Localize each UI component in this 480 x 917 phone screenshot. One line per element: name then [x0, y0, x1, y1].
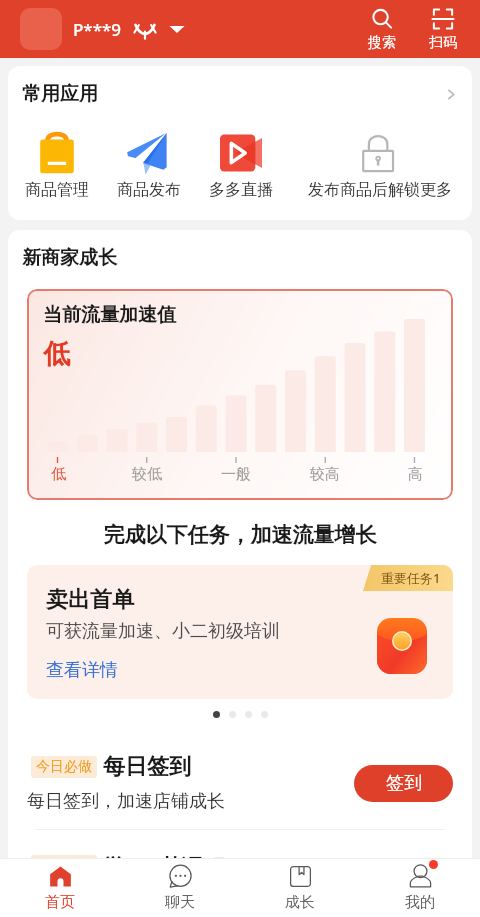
button[interactable]: Switch shop [168, 20, 186, 38]
staticText: 扫码 [429, 34, 457, 52]
button[interactable]: 多多直播 [195, 132, 287, 200]
button[interactable]: Shop avatar [20, 8, 62, 50]
button[interactable]: 今日必做 [27, 753, 453, 813]
staticText: 今日必做 [36, 857, 92, 875]
button[interactable]: 我的 [360, 859, 480, 917]
staticText: 高 [408, 465, 423, 484]
staticText: 当前流量加速值 [43, 303, 176, 327]
button[interactable]: Scan QR code [429, 7, 457, 52]
staticText: 去学习 [377, 871, 431, 894]
staticText: 搜索 [368, 34, 396, 52]
button[interactable]: Search [368, 7, 396, 52]
staticText: 我的 [405, 893, 435, 912]
staticText: 学习成长课程，掌握运营知识 [27, 890, 261, 913]
button[interactable]: 签到 [354, 765, 453, 802]
button[interactable]: 首页 [0, 859, 120, 917]
staticText: 商品管理 [25, 180, 89, 200]
staticText: 聊天 [165, 893, 195, 912]
button[interactable]: 发布商品后解锁更多 [287, 132, 472, 200]
button[interactable]: 商品发布 [103, 132, 195, 200]
staticText: 发布商品后解锁更多 [308, 180, 452, 200]
button[interactable]: 重要任务1 [27, 565, 453, 699]
staticText: 低 [43, 337, 70, 371]
staticText: 签到 [386, 772, 422, 795]
button[interactable]: Hide data [134, 18, 156, 40]
staticText: 成长 [285, 893, 315, 912]
staticText: 今日必做 [36, 758, 92, 776]
staticText: 每日签到 [103, 753, 191, 781]
button[interactable]: 今日必做 [27, 851, 453, 913]
staticText: 完成以下任务，加速流量增长 [8, 522, 472, 548]
staticText: 较低 [132, 465, 162, 484]
button[interactable]: 成长 [240, 859, 360, 917]
button[interactable]: 商品管理 [10, 132, 103, 200]
staticText: 每日签到，加速店铺成长 [27, 790, 225, 813]
staticText: P***9 [73, 18, 122, 41]
button[interactable]: 查看详情 [46, 659, 118, 682]
staticText: 卖出首单 [46, 586, 134, 614]
staticText: 学习0基课程 [103, 851, 226, 881]
staticText: 首页 [45, 893, 75, 912]
button[interactable]: 聊天 [120, 859, 240, 917]
staticText: 新商家成长 [22, 246, 117, 270]
staticText: 多多直播 [209, 180, 273, 200]
staticText: 重要任务1 [381, 569, 441, 587]
staticText: 一般 [221, 465, 251, 484]
staticText: 低 [51, 465, 66, 484]
staticText: 常用应用 [22, 82, 98, 106]
staticText: 可获流量加速、小二初级培训 [46, 620, 280, 643]
button[interactable]: 常用应用 [8, 66, 472, 108]
staticText: 商品发布 [117, 180, 181, 200]
button[interactable]: 去学习 [354, 864, 453, 901]
staticText: 较高 [310, 465, 340, 484]
